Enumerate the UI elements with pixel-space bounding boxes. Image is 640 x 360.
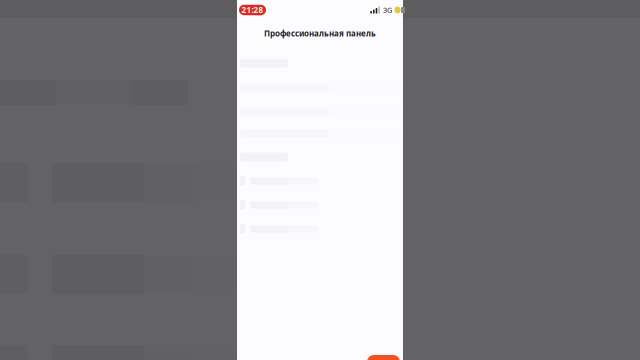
button[interactable]: List item bbox=[237, 224, 403, 233]
staticText: 21:28 bbox=[241, 5, 263, 15]
staticText: 3G bbox=[383, 5, 392, 15]
button[interactable]: Compose bbox=[367, 355, 400, 360]
button[interactable]: List item bbox=[237, 200, 403, 209]
staticText: Профессиональная панель bbox=[264, 28, 376, 39]
button[interactable]: List item bbox=[237, 176, 403, 185]
